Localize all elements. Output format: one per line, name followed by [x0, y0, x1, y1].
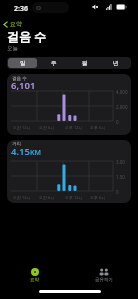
- staticText: 거리: [12, 141, 21, 147]
- staticText: 3.00: [116, 159, 125, 165]
- staticText: 일: [20, 60, 26, 67]
- staticText: 6,101: [11, 79, 36, 92]
- staticText: 걸음 수: [7, 28, 47, 44]
- staticText: 오후 12시: [65, 195, 83, 200]
- staticText: 오후 6시: [90, 125, 106, 130]
- staticText: 오후 12시: [65, 125, 83, 130]
- button[interactable]: 요약: [7, 266, 62, 286]
- staticText: 0: [116, 189, 119, 195]
- staticText: 요약: [10, 20, 22, 28]
- staticText: 요약: [30, 277, 39, 283]
- button[interactable]: 요약: [2, 18, 23, 30]
- button[interactable]: 일: [8, 58, 37, 68]
- staticText: 오늘: [7, 45, 18, 52]
- staticText: 년: [113, 60, 119, 67]
- staticText: 2:36: [14, 4, 28, 14]
- staticText: 오전 12시: [13, 125, 31, 130]
- button[interactable]: 거리: [7, 140, 131, 203]
- button[interactable]: 월: [70, 58, 99, 68]
- staticText: 걸음 수: [12, 75, 27, 81]
- staticText: 1.50: [116, 174, 125, 180]
- staticText: 오전 6시: [39, 125, 55, 130]
- staticText: 주: [51, 60, 57, 67]
- staticText: 0: [116, 119, 119, 125]
- button[interactable]: 주: [39, 58, 68, 68]
- staticText: 4.15KM: [11, 145, 41, 158]
- button[interactable]: 공유하기: [76, 266, 131, 286]
- staticText: 4,000: [116, 89, 128, 95]
- button[interactable]: 걸음 수: [7, 74, 131, 135]
- staticText: 월: [82, 60, 88, 67]
- staticText: 오후 6시: [90, 195, 106, 200]
- staticText: 2,000: [116, 104, 128, 110]
- staticText: 공유하기: [95, 277, 113, 283]
- staticText: 오전 12시: [13, 195, 31, 200]
- button[interactable]: 년: [101, 58, 130, 68]
- staticText: 오전 6시: [39, 195, 55, 200]
